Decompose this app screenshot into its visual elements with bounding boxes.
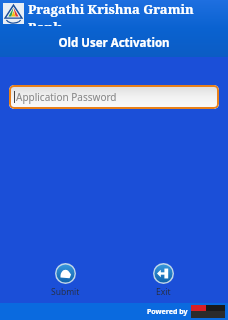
staticText: Pragathi Krishna Gramin Bank bbox=[28, 0, 228, 26]
button[interactable]: Powered by FSS Net bbox=[191, 305, 225, 318]
button[interactable]: Submit bbox=[33, 257, 97, 303]
staticText: Exit bbox=[156, 286, 171, 298]
other: Bank logo bbox=[3, 3, 24, 24]
staticText: Powered by bbox=[147, 307, 188, 317]
staticText: Old User Activation bbox=[58, 35, 170, 51]
button[interactable]: Application Password bbox=[9, 85, 219, 109]
staticText: Application Password bbox=[16, 90, 117, 104]
staticText: Submit bbox=[51, 286, 80, 298]
other: Exit bbox=[153, 263, 174, 284]
other: Submit bbox=[55, 263, 76, 284]
button[interactable]: Exit bbox=[131, 257, 195, 303]
